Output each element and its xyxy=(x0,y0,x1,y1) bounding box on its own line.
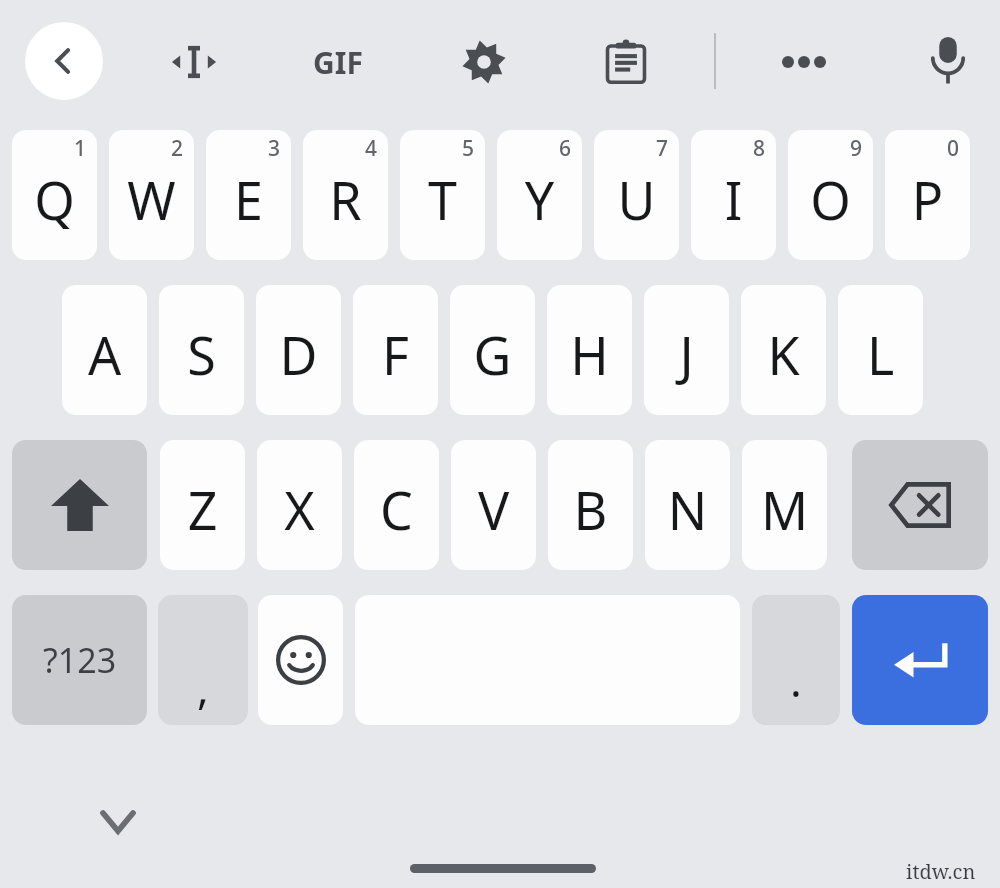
button[interactable]: . xyxy=(752,595,840,725)
button[interactable]: ?123 xyxy=(12,595,147,725)
staticText: L xyxy=(838,319,923,390)
button[interactable]: F xyxy=(353,285,438,415)
staticText: 8 xyxy=(753,134,766,163)
staticText: . xyxy=(752,650,840,710)
staticText: O xyxy=(788,164,873,235)
staticText: V xyxy=(451,474,536,545)
staticText: 3 xyxy=(268,134,281,163)
staticText: 0 xyxy=(947,134,960,163)
staticText: Y xyxy=(497,164,582,235)
staticText: U xyxy=(594,164,679,235)
button[interactable]: R xyxy=(303,130,388,260)
staticText: P xyxy=(885,164,970,235)
button[interactable]: W xyxy=(109,130,194,260)
staticText: F xyxy=(353,319,438,390)
staticText: itdw.cn xyxy=(906,858,976,885)
button[interactable]: Y xyxy=(497,130,582,260)
button[interactable]: J xyxy=(644,285,729,415)
button[interactable]: Hide keyboard xyxy=(86,790,150,854)
button[interactable]: A xyxy=(62,285,147,415)
button[interactable]: N xyxy=(645,440,730,570)
button[interactable]: M xyxy=(742,440,827,570)
button[interactable]: , xyxy=(158,595,248,725)
button[interactable]: Emoji xyxy=(258,595,343,725)
button[interactable]: B xyxy=(548,440,633,570)
button[interactable]: U xyxy=(594,130,679,260)
button[interactable]: E xyxy=(206,130,291,260)
staticText: G xyxy=(450,319,535,390)
staticText: 9 xyxy=(850,134,863,163)
staticText: Z xyxy=(160,474,245,545)
staticText: N xyxy=(645,474,730,545)
staticText: D xyxy=(256,319,341,390)
staticText: M xyxy=(742,474,827,545)
staticText: 5 xyxy=(462,134,475,163)
staticText: 7 xyxy=(656,134,669,163)
staticText: R xyxy=(303,164,388,235)
button[interactable]: X xyxy=(257,440,342,570)
button[interactable]: K xyxy=(741,285,826,415)
staticText: 6 xyxy=(559,134,572,163)
button[interactable]: G xyxy=(450,285,535,415)
button[interactable]: S xyxy=(159,285,244,415)
staticText: A xyxy=(62,319,147,390)
staticText: I xyxy=(691,164,776,235)
button[interactable]: Shift xyxy=(12,440,147,570)
button[interactable]: V xyxy=(451,440,536,570)
button[interactable]: H xyxy=(547,285,632,415)
staticText: B xyxy=(548,474,633,545)
staticText: C xyxy=(354,474,439,545)
staticText: K xyxy=(741,319,826,390)
button[interactable]: P xyxy=(885,130,970,260)
button[interactable]: Backspace xyxy=(852,440,988,570)
button[interactable]: More options xyxy=(768,26,840,98)
staticText: T xyxy=(400,164,485,235)
staticText: H xyxy=(547,319,632,390)
button[interactable]: C xyxy=(354,440,439,570)
button[interactable]: Settings xyxy=(448,26,520,98)
button[interactable]: T xyxy=(400,130,485,260)
button[interactable]: O xyxy=(788,130,873,260)
button[interactable]: Move cursor xyxy=(158,26,230,98)
button[interactable]: Q xyxy=(12,130,97,260)
staticText: S xyxy=(159,319,244,390)
button[interactable]: Z xyxy=(160,440,245,570)
staticText: Q xyxy=(12,164,97,235)
staticText: W xyxy=(109,164,194,235)
button[interactable]: I xyxy=(691,130,776,260)
button[interactable]: D xyxy=(256,285,341,415)
button[interactable]: Clipboard xyxy=(590,26,662,98)
staticText: , xyxy=(158,657,248,717)
button[interactable]: L xyxy=(838,285,923,415)
staticText: GIF xyxy=(313,42,363,83)
staticText: 1 xyxy=(74,134,87,163)
staticText: J xyxy=(644,319,729,390)
staticText: E xyxy=(206,164,291,235)
staticText: X xyxy=(257,474,342,545)
button[interactable]: Enter xyxy=(852,595,988,725)
staticText: 4 xyxy=(365,134,378,163)
staticText: 2 xyxy=(171,134,184,163)
button[interactable]: Voice input xyxy=(912,24,984,96)
staticText: ?123 xyxy=(43,637,117,683)
button[interactable]: GIF xyxy=(295,26,381,98)
button[interactable]: Back xyxy=(25,22,103,100)
